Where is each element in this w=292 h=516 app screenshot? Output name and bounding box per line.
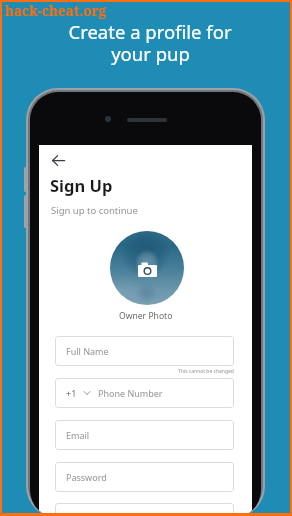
button[interactable]: +1 [55, 378, 234, 408]
staticText: Phone Number [98, 387, 163, 399]
staticText: Sign up to continue [51, 204, 138, 217]
staticText: Full Name [66, 345, 109, 357]
button[interactable]: Password [55, 462, 234, 492]
staticText: Sign Up [50, 174, 113, 196]
staticText: Create a profile for [68, 19, 232, 44]
button[interactable]: Back [44, 146, 72, 174]
button[interactable]: Email [55, 420, 234, 450]
button[interactable] [55, 503, 234, 516]
staticText: Password [66, 471, 107, 483]
staticText: Email [66, 429, 90, 441]
button[interactable]: Owner Photo [110, 231, 184, 305]
staticText: +1 [66, 387, 77, 399]
staticText: your pup [111, 41, 190, 66]
staticText: Owner Photo [119, 310, 173, 322]
staticText: hack-cheat.org [5, 2, 107, 20]
button[interactable]: Full Name [55, 336, 234, 366]
staticText: This cannot be changed [178, 368, 234, 375]
